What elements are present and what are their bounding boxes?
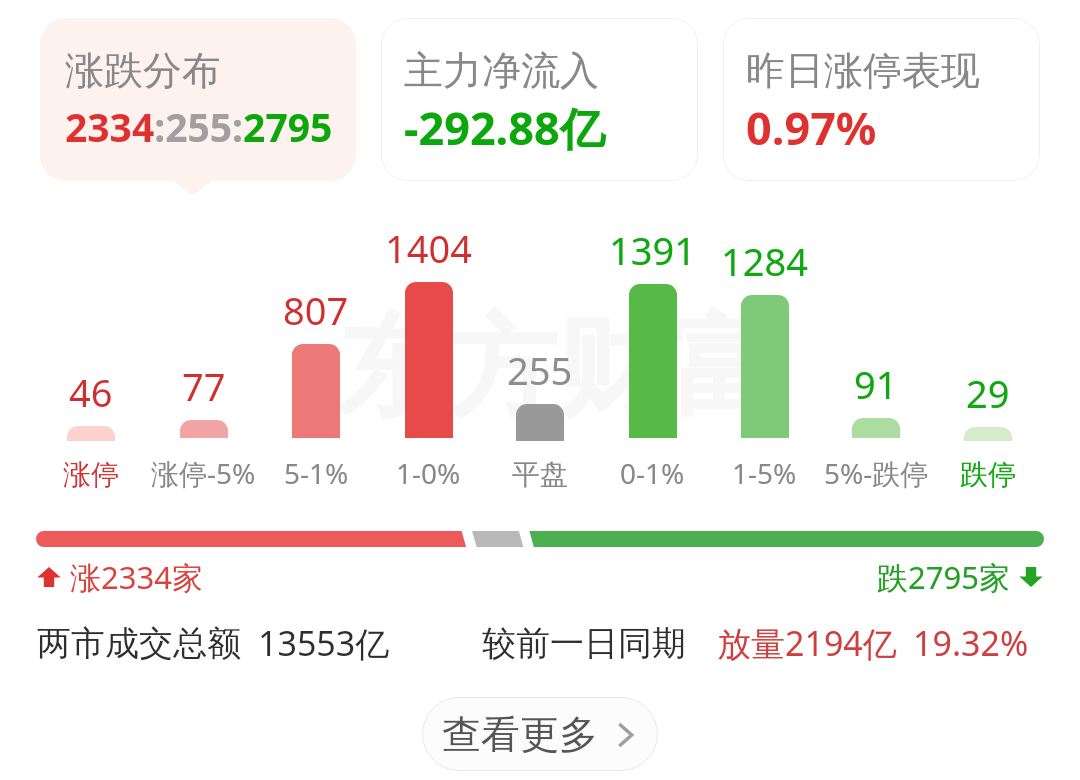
button[interactable]: 涨跌分布 — [40, 18, 356, 181]
staticText: 255 — [507, 344, 573, 396]
button[interactable]: 主力净流入 — [381, 18, 698, 181]
button[interactable]: 29 — [932, 192, 1044, 492]
button[interactable]: 1391 — [596, 192, 708, 492]
staticText: 放量2194亿 — [717, 620, 897, 666]
staticText: -292.88亿 — [404, 97, 605, 158]
button[interactable]: 91 — [820, 192, 932, 492]
other: Advancing stocks — [36, 564, 62, 590]
staticText: 807 — [283, 284, 349, 336]
staticText: 1-0% — [396, 454, 461, 492]
staticText: 19.32% — [913, 620, 1029, 666]
staticText: 77 — [182, 360, 226, 412]
button[interactable]: 查看更多 — [422, 697, 658, 771]
button[interactable]: 1404 — [372, 192, 484, 492]
staticText: 涨停-5% — [151, 454, 256, 492]
button[interactable]: 昨日涨停表现 — [723, 18, 1040, 181]
staticText: 主力净流入 — [404, 46, 599, 95]
staticText: 1404 — [385, 222, 472, 274]
other: Declining stocks — [1018, 564, 1044, 590]
staticText: 46 — [69, 366, 113, 418]
staticText: 1391 — [609, 224, 696, 276]
staticText: 13553亿 — [258, 620, 390, 666]
staticText: 昨日涨停表现 — [746, 46, 980, 95]
staticText: 29 — [966, 367, 1010, 419]
staticText: 涨停 — [63, 457, 119, 492]
staticText: 较前一日同期 — [482, 622, 686, 665]
staticText: 涨2334家 — [70, 556, 203, 598]
staticText: 查看更多 — [442, 710, 598, 759]
button[interactable]: 46 — [34, 192, 147, 492]
staticText: 平盘 — [512, 457, 568, 492]
staticText: 5-1% — [284, 454, 349, 492]
staticText: 涨跌分布 — [65, 46, 221, 95]
button[interactable]: 77 — [147, 192, 260, 492]
staticText: 2334:255:2795 — [65, 100, 333, 153]
staticText: 5%-跌停 — [824, 454, 929, 492]
staticText: 0-1% — [620, 454, 685, 492]
staticText: 跌停 — [960, 457, 1016, 492]
staticText: 91 — [854, 358, 898, 410]
staticText: 跌2795家 — [877, 556, 1010, 598]
staticText: 0.97% — [746, 97, 877, 158]
staticText: 东方财富 — [337, 299, 777, 438]
button[interactable]: 255 — [484, 192, 596, 492]
staticText: 两市成交总额 — [37, 622, 241, 665]
staticText: 1284 — [721, 235, 808, 287]
button[interactable]: 807 — [260, 192, 372, 492]
staticText: 1-5% — [732, 454, 797, 492]
button[interactable]: 1284 — [708, 192, 820, 492]
